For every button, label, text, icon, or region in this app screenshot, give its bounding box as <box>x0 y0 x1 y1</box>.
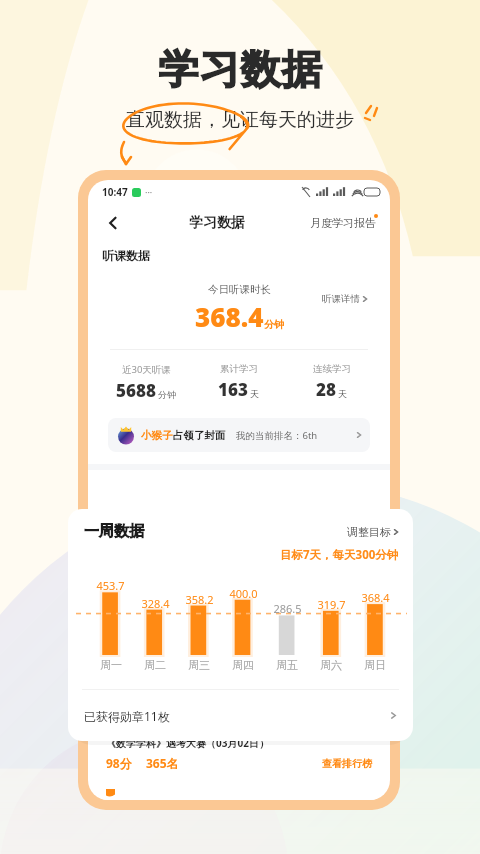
staticText: 一周数据 <box>84 522 144 541</box>
staticText: 近30天听课 <box>122 363 171 376</box>
staticText: 周日 <box>364 658 386 672</box>
button[interactable]: 听课详情 <box>322 293 368 305</box>
staticText: 周五 <box>276 658 298 672</box>
button[interactable]: 小猴子 <box>108 418 370 452</box>
button[interactable]: 《语文学科》超考大赛（02月24日） <box>98 786 380 800</box>
staticText: 周一 <box>100 658 122 672</box>
staticText: 10:47 <box>102 185 128 199</box>
staticText: 319.7 <box>317 597 346 612</box>
staticText: 见证每天的进步 <box>221 108 354 132</box>
staticText: 学习数据 <box>189 214 245 232</box>
button[interactable]: 《数学学科》遇考大赛（03月02日） <box>98 732 380 779</box>
staticText: 28 <box>316 378 336 401</box>
staticText: 目标7天，每天300分钟 <box>280 547 399 563</box>
staticText: 查看排行榜 <box>322 757 372 770</box>
staticText: 占领了封面 <box>173 429 226 442</box>
button[interactable]: 返回 <box>100 210 126 236</box>
staticText: 连续学习 <box>313 363 351 375</box>
staticText: 周四 <box>232 658 254 672</box>
staticText: 分钟 <box>158 389 176 400</box>
staticText: ··· <box>145 186 153 198</box>
staticText: 已获得勋章11枚 <box>84 708 170 724</box>
staticText: 328.4 <box>141 596 170 611</box>
staticText: 学习数据 <box>158 44 322 94</box>
staticText: 98分 <box>106 755 132 771</box>
staticText: 我的当前排名：6th <box>236 429 318 442</box>
staticText: 368.4 <box>195 299 264 334</box>
staticText: 163 <box>218 378 248 401</box>
staticText: 周二 <box>144 658 166 672</box>
staticText: 400.0 <box>229 586 258 601</box>
staticText: 天 <box>338 388 347 399</box>
staticText: 453.7 <box>96 578 125 593</box>
staticText: 《数学学科》遇考大赛（03月02日） <box>106 736 269 750</box>
button[interactable]: 已获得勋章11枚 <box>68 690 413 741</box>
staticText: 今日听课时长 <box>208 283 271 296</box>
staticText: 听课详情 <box>322 293 360 305</box>
staticText: 调整目标 <box>347 525 391 539</box>
staticText: 5688 <box>116 379 156 402</box>
staticText: 月度学习报告 <box>310 216 376 230</box>
staticText: 天 <box>250 388 259 399</box>
staticText: 周六 <box>320 658 342 672</box>
staticText: 365名 <box>146 755 179 771</box>
staticText: 小猴子 <box>141 429 173 442</box>
staticText: 听课数据 <box>102 248 150 263</box>
staticText: 368.4 <box>361 590 390 605</box>
staticText: 分钟 <box>264 318 284 331</box>
staticText: 直观数据， <box>126 108 221 132</box>
staticText: 286.5 <box>273 601 302 616</box>
button[interactable]: 月度学习报告 <box>308 214 378 232</box>
staticText: 周三 <box>188 658 210 672</box>
staticText: 358.2 <box>185 592 214 607</box>
button[interactable]: 调整目标 <box>347 525 399 539</box>
staticText: 累计学习 <box>220 363 258 375</box>
